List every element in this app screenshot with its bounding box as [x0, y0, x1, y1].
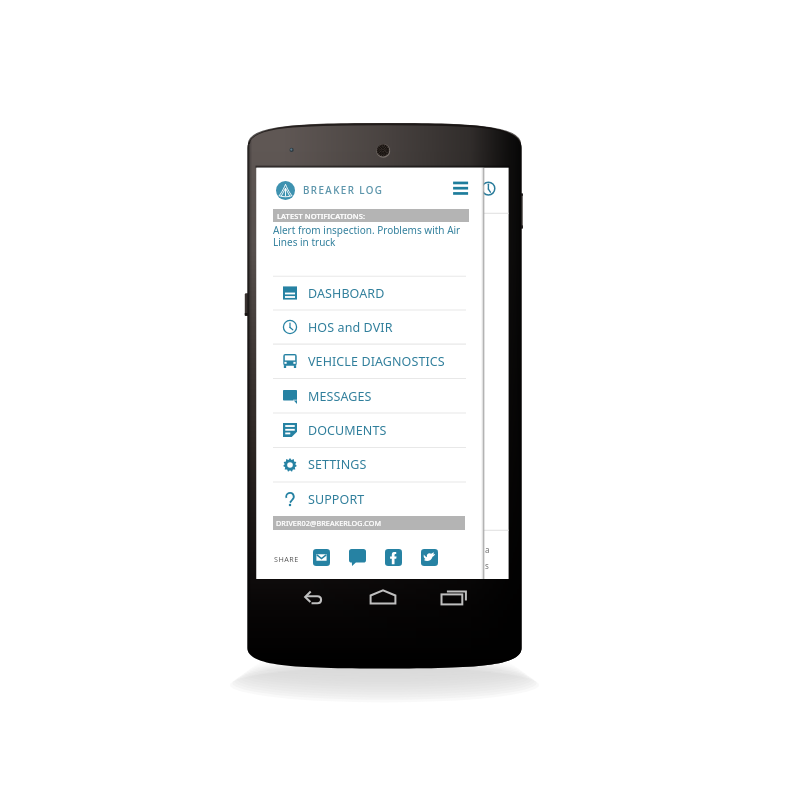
- button[interactable]: SUPPORT: [273, 482, 466, 516]
- staticText: s: [485, 560, 489, 571]
- button[interactable]: DRIVER02@BREAKERLOG.COM: [273, 516, 465, 530]
- staticText: HOS and DVIR: [308, 319, 393, 336]
- button[interactable]: HOS and DVIR: [273, 310, 466, 344]
- staticText: DRIVER02@BREAKERLOG.COM: [276, 518, 382, 528]
- button[interactable]: Recent apps: [440, 584, 468, 612]
- button[interactable]: DOCUMENTS: [273, 413, 466, 447]
- button[interactable]: Back: [299, 584, 327, 612]
- button[interactable]: Share on Twitter: [421, 549, 438, 566]
- staticText: DOCUMENTS: [308, 422, 387, 439]
- staticText: SHARE: [274, 554, 299, 564]
- button[interactable]: Home: [369, 584, 397, 612]
- button[interactable]: VEHICLE DIAGNOSTICS: [273, 344, 466, 378]
- staticText: VEHICLE DIAGNOSTICS: [308, 353, 445, 370]
- staticText: SETTINGS: [308, 456, 367, 473]
- staticText: MESSAGES: [308, 388, 372, 405]
- staticText: BREAKER LOG: [303, 184, 384, 197]
- staticText: SUPPORT: [308, 491, 365, 508]
- button[interactable]: DASHBOARD: [273, 276, 466, 310]
- button[interactable]: MESSAGES: [273, 379, 466, 414]
- button[interactable]: Share on Facebook: [385, 549, 402, 566]
- button[interactable]: BREAKER LOG: [276, 181, 384, 200]
- button[interactable]: SETTINGS: [273, 447, 466, 482]
- button[interactable]: Share by message: [349, 549, 366, 566]
- staticText: LATEST NOTIFICATIONS:: [277, 211, 366, 221]
- staticText: Alert from inspection. Problems with Air…: [273, 223, 469, 249]
- button[interactable]: Open navigation menu: [449, 177, 472, 200]
- button[interactable]: LATEST NOTIFICATIONS:: [273, 209, 469, 222]
- staticText: a: [485, 544, 490, 555]
- button[interactable]: Share by email: [313, 549, 330, 566]
- staticText: DASHBOARD: [308, 285, 385, 302]
